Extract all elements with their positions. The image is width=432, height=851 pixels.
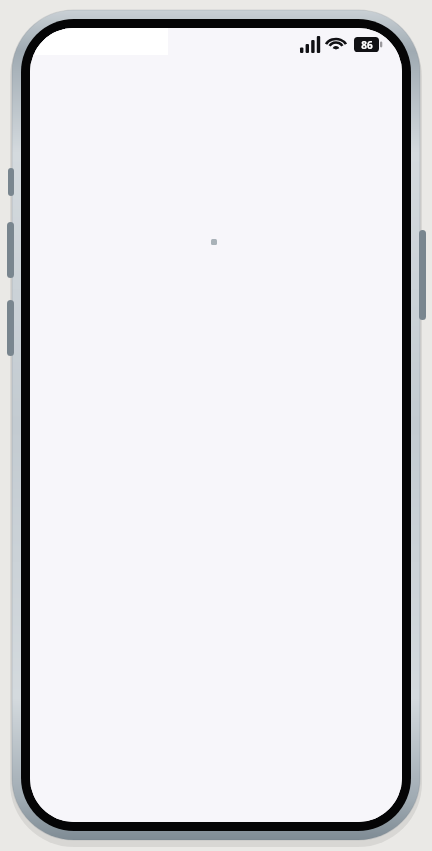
staticText: 86 xyxy=(361,38,373,52)
other: Loading xyxy=(211,239,217,245)
button[interactable]: Status: signal, Wi-Fi, battery 86 percen… xyxy=(298,31,398,57)
button[interactable] xyxy=(35,28,168,55)
